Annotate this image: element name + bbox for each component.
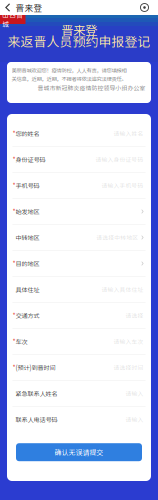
staticText: 车次 [15,337,27,346]
staticText: 晋城市新冠肺炎疫情防控领导小组办公室 [37,84,145,92]
staticText: 请选择 [125,311,143,320]
staticText: * [12,311,15,320]
staticText: 来返晋人员预约申报登记 [7,32,150,50]
staticText: * [12,363,15,372]
staticText: 关信息，近期，近期，不报者将依法追究法律责任。 [11,75,126,83]
staticText: 请输入身份证号码 [95,155,143,164]
staticText: 中转地区 [15,233,39,242]
staticText: 确认无误请提交 [54,447,103,457]
staticText: * [12,259,15,268]
staticText: * [12,337,15,346]
staticText: 手机号码 [15,181,39,190]
staticText: 请输入 [125,389,143,398]
staticText: 晋来登 [61,20,97,38]
staticText: 美丽晋城欢迎您！疫情防控，人人有责，请您填报相 [11,66,126,74]
staticText: * [12,155,15,164]
staticText: 目的地区 [15,259,39,268]
button[interactable]: * [7,121,151,147]
button[interactable] [7,277,151,303]
button[interactable]: * [7,147,151,173]
staticText: 具体住址 [15,285,39,294]
staticText: 请输入 [125,415,143,424]
button[interactable] [7,225,151,251]
staticText: 请输入手机号码 [101,181,143,190]
staticText: 身份证号码 [15,155,45,164]
staticText: 紧急联系人姓名 [15,389,57,398]
button[interactable]: * [7,251,151,277]
button[interactable]: More [137,0,152,15]
staticText: 交通方式 [15,311,39,320]
button[interactable]: * [7,329,151,355]
staticText: * [12,181,15,190]
staticText: 联系人电话号码 [15,415,57,424]
button[interactable] [7,381,151,407]
button[interactable]: * [7,303,151,329]
button[interactable]: * [7,173,151,199]
staticText: * [12,129,15,138]
button[interactable] [7,407,151,432]
staticText: 晋来登 [15,1,42,14]
staticText: 请输入具体住址 [101,285,143,294]
staticText: 请输入车次 [113,337,143,346]
staticText: 请选择时间 [113,363,143,372]
staticText: 山西晋城 [2,10,23,29]
staticText: (预计)到晋时间 [15,363,55,372]
button[interactable]: 确认无误请提交 [16,443,142,461]
button[interactable]: * [7,199,151,225]
staticText: 请选择中转地区 [96,233,138,242]
staticText: 始发地区 [15,207,39,216]
staticText: 您的姓名 [15,129,39,138]
staticText: * [12,207,15,216]
button[interactable]: * [7,355,151,381]
staticText: 请输入姓名 [113,129,143,138]
button[interactable]: Back [0,0,47,15]
